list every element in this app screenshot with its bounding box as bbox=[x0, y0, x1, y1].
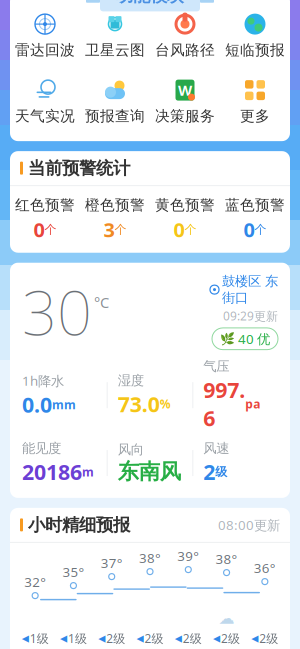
staticText: 黄色预警 bbox=[155, 196, 215, 214]
staticText: 个 bbox=[44, 222, 56, 237]
staticText: 当前预警统计 bbox=[28, 157, 130, 179]
staticText: 小时精细预报 bbox=[28, 514, 130, 536]
staticText: 40 优 bbox=[238, 330, 270, 348]
staticText: 2级 bbox=[221, 630, 240, 646]
staticText: 36° bbox=[254, 559, 276, 577]
staticText: ◀ bbox=[213, 633, 220, 643]
staticText: ☁ bbox=[219, 609, 235, 627]
staticText: 雷达回波 bbox=[15, 41, 75, 59]
staticText: 997.6 bbox=[203, 375, 245, 432]
staticText: 0 bbox=[33, 216, 44, 243]
staticText: 短临预报 bbox=[225, 41, 285, 59]
staticText: 2 bbox=[203, 458, 215, 486]
staticText: 个 bbox=[184, 222, 196, 237]
staticText: 73.0 bbox=[118, 390, 160, 418]
button[interactable]: 更多 bbox=[220, 73, 290, 129]
staticText: 2级 bbox=[259, 630, 278, 646]
staticText: 20186 bbox=[22, 458, 82, 486]
staticText: ◀ bbox=[98, 633, 105, 643]
staticText: 0.0 bbox=[22, 390, 52, 419]
button[interactable]: 台风路径 bbox=[150, 7, 220, 63]
staticText: 蓝色预警 bbox=[225, 196, 285, 214]
staticText: °C bbox=[94, 293, 109, 312]
staticText: ◀ bbox=[136, 633, 143, 643]
staticText: 个 bbox=[114, 222, 126, 237]
staticText: 0 bbox=[243, 216, 254, 243]
staticText: 气压 bbox=[203, 358, 229, 375]
staticText: 0 bbox=[173, 216, 184, 243]
staticText: 08:00更新 bbox=[218, 516, 280, 534]
staticText: 风速 bbox=[203, 440, 229, 457]
staticText: 2级 bbox=[144, 630, 163, 646]
staticText: mm bbox=[52, 397, 76, 412]
staticText: 09:29更新 bbox=[223, 308, 278, 324]
staticText: ◀ bbox=[22, 633, 29, 643]
staticText: 决策服务 bbox=[155, 107, 215, 125]
button[interactable]: W bbox=[150, 73, 220, 129]
staticText: 鼓楼区 东街口 bbox=[222, 273, 278, 306]
staticText: 3 bbox=[103, 216, 114, 243]
staticText: % bbox=[160, 396, 171, 412]
button[interactable]: 天气实况 bbox=[10, 73, 80, 129]
staticText: 东南风 bbox=[118, 459, 181, 485]
staticText: 2级 bbox=[106, 630, 125, 646]
staticText: 功能模块 bbox=[116, 0, 184, 6]
staticText: m bbox=[82, 464, 94, 480]
staticText: ◀ bbox=[60, 633, 67, 643]
staticText: W bbox=[178, 80, 192, 100]
staticText: 30 bbox=[22, 271, 92, 352]
staticText: 35° bbox=[62, 563, 84, 581]
staticText: 38° bbox=[216, 550, 238, 568]
staticText: 卫星云图 bbox=[85, 41, 145, 59]
staticText: 1h降水 bbox=[22, 372, 64, 389]
staticText: 能见度 bbox=[22, 440, 61, 457]
button[interactable]: 卫星云图 bbox=[80, 7, 150, 63]
button[interactable]: 短临预报 bbox=[220, 7, 290, 63]
button[interactable]: 预报查询 bbox=[80, 73, 150, 129]
staticText: 🌿 bbox=[220, 332, 235, 346]
staticText: 级 bbox=[215, 464, 227, 479]
staticText: 湿度 bbox=[118, 372, 144, 389]
staticText: pa bbox=[245, 396, 260, 412]
staticText: 39° bbox=[177, 547, 199, 565]
staticText: 更多 bbox=[240, 107, 270, 125]
staticText: ◀ bbox=[251, 633, 258, 643]
staticText: 1级 bbox=[30, 630, 49, 646]
staticText: 台风路径 bbox=[155, 41, 215, 59]
staticText: 风向 bbox=[118, 441, 144, 458]
staticText: 2级 bbox=[183, 630, 202, 646]
staticText: 红色预警 bbox=[15, 196, 75, 214]
staticText: 预报查询 bbox=[85, 107, 145, 125]
staticText: 橙色预警 bbox=[85, 196, 145, 214]
button[interactable]: 雷达回波 bbox=[10, 7, 80, 63]
staticText: 37° bbox=[101, 554, 123, 572]
staticText: 天气实况 bbox=[15, 107, 75, 125]
staticText: 1级 bbox=[68, 630, 87, 646]
staticText: 32° bbox=[24, 573, 46, 591]
staticText: ◀ bbox=[175, 633, 182, 643]
staticText: 个 bbox=[254, 222, 266, 237]
staticText: 38° bbox=[139, 549, 161, 567]
